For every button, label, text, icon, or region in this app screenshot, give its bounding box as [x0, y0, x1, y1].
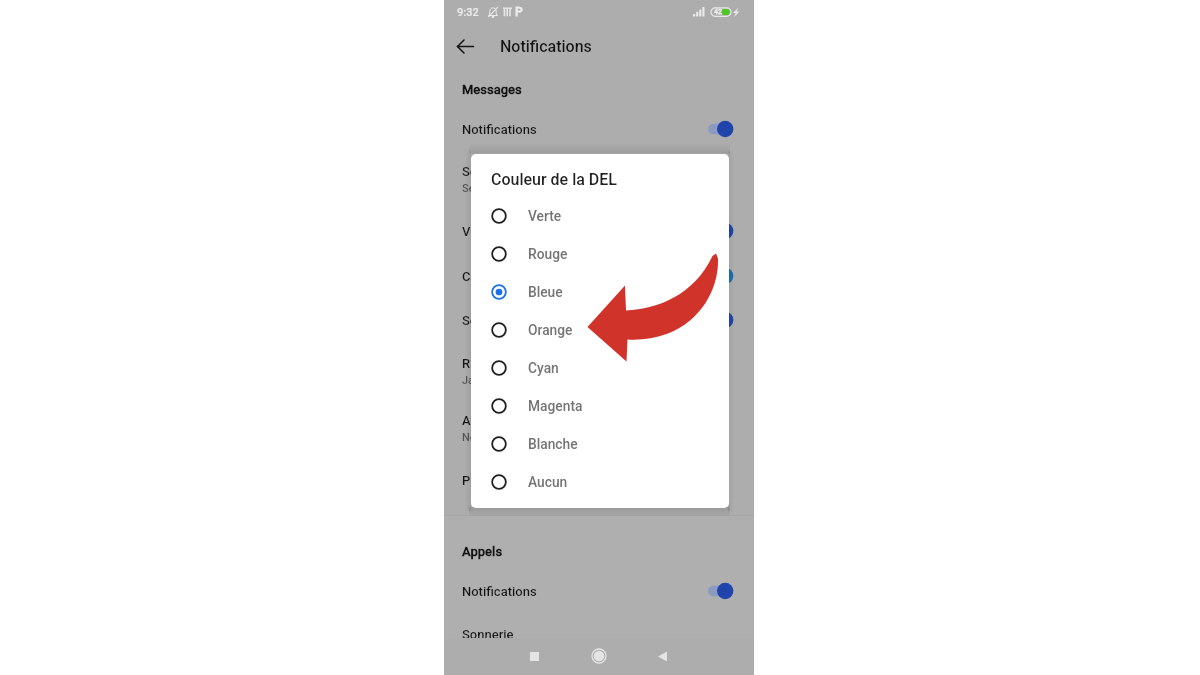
button[interactable]: Recent apps — [519, 641, 549, 671]
staticText: Magenta — [528, 398, 583, 414]
staticText: Couleur de la DEL — [491, 170, 617, 189]
button[interactable]: Back — [647, 641, 677, 671]
button[interactable]: Vibreur — [444, 209, 754, 253]
staticText: Notifications — [462, 122, 537, 137]
staticText: Orange — [528, 322, 573, 338]
staticText: Appels — [462, 544, 503, 559]
staticText: Blanche — [528, 436, 578, 452]
staticText: Son en mode silencieux — [462, 313, 600, 328]
button[interactable]: Bleue — [471, 273, 729, 311]
button[interactable]: Home — [584, 641, 614, 671]
button[interactable]: Rouge — [471, 235, 729, 273]
button[interactable]: Orange — [471, 311, 729, 349]
button[interactable]: Notifications — [444, 107, 754, 151]
button[interactable]: Cyan — [471, 349, 729, 387]
button[interactable]: Affichage — [444, 399, 754, 451]
button[interactable]: Blanche — [471, 425, 729, 463]
staticText: Vibreur — [462, 224, 505, 239]
staticText: 9:32 — [457, 6, 479, 19]
staticText: Aucun — [528, 474, 568, 490]
button[interactable]: Magenta — [471, 387, 729, 425]
staticText: P — [515, 5, 523, 19]
button[interactable]: Son en mode silencieux — [444, 298, 754, 342]
button[interactable]: Sonnerie — [444, 612, 754, 638]
staticText: Cyan — [528, 360, 559, 376]
staticText: Rappel — [462, 356, 503, 371]
staticText: Messages — [462, 82, 522, 97]
button[interactable]: Son — [444, 150, 754, 202]
staticText: Affichage — [462, 413, 518, 428]
staticText: Jamais — [462, 374, 499, 387]
staticText: Notifications contextuelles — [462, 431, 594, 444]
button[interactable]: Notifications — [444, 569, 754, 613]
staticText: Bleue — [528, 284, 563, 300]
button[interactable]: Clignotement de la DEL — [444, 254, 754, 298]
staticText: Notifications — [500, 37, 592, 56]
button[interactable]: Priorité — [444, 458, 754, 502]
staticText: Sonnerie — [462, 627, 514, 638]
staticText: Son — [462, 164, 485, 179]
staticText: Priorité — [462, 473, 505, 488]
staticText: Clignotement de la DEL — [462, 269, 598, 284]
staticText: Rouge — [528, 246, 568, 262]
button[interactable]: Aucun — [471, 463, 729, 501]
button[interactable]: Rappel — [444, 342, 754, 394]
button[interactable]: Back — [450, 31, 480, 61]
staticText: 42 — [714, 8, 722, 16]
staticText: Notifications — [462, 584, 537, 599]
staticText: Sélectionner une sonnerie — [462, 182, 590, 195]
staticText: Verte — [528, 208, 562, 224]
button[interactable]: Verte — [471, 197, 729, 235]
